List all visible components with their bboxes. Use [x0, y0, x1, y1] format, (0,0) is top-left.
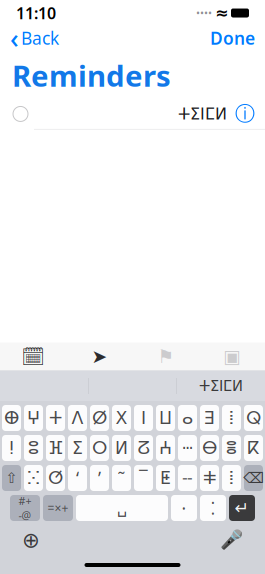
- button[interactable]: Suggestion 3: [177, 373, 265, 399]
- button[interactable]: ⵍ: [112, 435, 131, 461]
- staticText: ⇧: [5, 470, 17, 486]
- button[interactable]: ⵟ: [156, 465, 175, 491]
- staticText: ⵄ: [159, 438, 172, 458]
- staticText: ⵚ: [48, 468, 63, 488]
- button[interactable]: ⵂ: [222, 465, 241, 491]
- button[interactable]: ⵜ: [46, 405, 65, 431]
- button[interactable]: ⵓ: [24, 435, 43, 461]
- staticText: ⌫: [243, 470, 264, 486]
- staticText: Done: [210, 26, 255, 49]
- staticText: ⁚: [211, 496, 215, 519]
- staticText: ⵟ: [160, 468, 171, 488]
- button[interactable]: ⵈ: [178, 435, 197, 461]
- button[interactable]: Done: [210, 26, 255, 49]
- button[interactable]: ˜: [112, 465, 131, 491]
- button[interactable]: ⴻ: [222, 435, 241, 461]
- staticText: 🎤: [220, 529, 243, 551]
- button[interactable]: ⴼ: [46, 435, 65, 461]
- button[interactable]: ⵐ: [200, 465, 219, 491]
- staticText: ⓘ: [235, 102, 255, 126]
- button[interactable]: Mark as completed: [0, 106, 34, 121]
- staticText: ⵈ: [182, 438, 193, 458]
- button[interactable]: ¯: [134, 465, 153, 491]
- staticText: ⴼ: [48, 438, 63, 458]
- button[interactable]: ‹: [10, 20, 59, 56]
- staticText: ⵂ: [229, 408, 234, 428]
- staticText: ⵘ: [27, 468, 40, 488]
- staticText: ⵜⵉⵏⵎⵍ: [199, 378, 243, 394]
- button[interactable]: ⴱ: [200, 435, 219, 461]
- button[interactable]: ⵁ: [90, 405, 109, 431]
- button[interactable]: Add location: [66, 346, 132, 367]
- staticText: ’: [98, 466, 101, 489]
- button[interactable]: ‘: [68, 465, 87, 491]
- button[interactable]: Add date: [0, 346, 66, 367]
- staticText: ‘: [76, 466, 79, 489]
- staticText: Reminders: [12, 56, 171, 95]
- button[interactable]: Next keyboard: [22, 528, 40, 552]
- staticText: ⵝ: [115, 408, 127, 428]
- button[interactable]: Delete: [244, 465, 263, 491]
- staticText: ⴻ: [225, 438, 237, 458]
- button[interactable]: ⵘ: [24, 465, 43, 491]
- button[interactable]: ’: [90, 465, 109, 491]
- staticText: ⵖ: [27, 408, 40, 428]
- staticText: ▣: [223, 346, 241, 367]
- button[interactable]: Space: [76, 495, 168, 521]
- button[interactable]: ⵄ: [156, 435, 175, 461]
- button[interactable]: Shift: [2, 465, 21, 491]
- staticText: ⴺ: [204, 408, 215, 428]
- staticText: ⵜ: [49, 408, 62, 428]
- staticText: ⵧ: [182, 469, 193, 486]
- staticText: ·: [181, 496, 186, 519]
- button[interactable]: ⁚: [200, 495, 226, 521]
- button[interactable]: ⵔ: [90, 435, 109, 461]
- staticText: 🗓: [21, 346, 45, 367]
- button[interactable]: ⵚ: [46, 465, 65, 491]
- button[interactable]: ⴲ: [2, 405, 21, 431]
- staticText: ⊕: [22, 528, 40, 552]
- staticText: ⵔ: [92, 438, 107, 458]
- staticText: ⵉ: [72, 438, 83, 458]
- button[interactable]: Numbers and symbols: [10, 495, 40, 521]
- staticText: ⴱ: [202, 438, 217, 458]
- staticText: ⵕ: [246, 408, 261, 428]
- button[interactable]: Flag: [132, 346, 199, 367]
- button[interactable]: ⵡ: [156, 405, 175, 431]
- button[interactable]: ⵖ: [24, 405, 43, 431]
- staticText: ⵁ: [92, 408, 107, 428]
- button[interactable]: ⵕ: [244, 405, 263, 431]
- staticText: ¯: [139, 466, 148, 489]
- button[interactable]: ⴽ: [244, 435, 263, 461]
- staticText: ⵐ: [203, 468, 216, 488]
- button[interactable]: ⴷ: [68, 405, 87, 431]
- button[interactable]: Symbols: [43, 495, 73, 521]
- button[interactable]: ⵂ: [222, 405, 241, 431]
- staticText: ⵒ: [137, 438, 150, 458]
- staticText: ↵: [234, 498, 249, 518]
- staticText: ˜: [117, 466, 125, 489]
- staticText: ⵑ: [9, 438, 14, 458]
- button[interactable]: Details: [227, 102, 265, 126]
- button[interactable]: ⵒ: [134, 435, 153, 461]
- button[interactable]: ⴰ: [178, 405, 197, 431]
- button[interactable]: ⵧ: [178, 465, 197, 491]
- button[interactable]: Add photo: [199, 346, 265, 367]
- button[interactable]: ⵉ: [68, 435, 87, 461]
- button[interactable]: Return: [229, 495, 255, 521]
- staticText: ⴰ: [182, 408, 193, 428]
- button[interactable]: ⴺ: [200, 405, 219, 431]
- staticText: #+ -@: [18, 494, 31, 522]
- button[interactable]: ⵑ: [2, 435, 21, 461]
- staticText: ⵂ: [229, 468, 234, 488]
- button[interactable]: ⵏ: [134, 405, 153, 431]
- staticText: ⵏ: [141, 408, 146, 428]
- button[interactable]: ·: [171, 495, 197, 521]
- button[interactable]: Dictation: [220, 529, 243, 551]
- button[interactable]: ⵝ: [112, 405, 131, 431]
- staticText: ␣: [117, 499, 127, 517]
